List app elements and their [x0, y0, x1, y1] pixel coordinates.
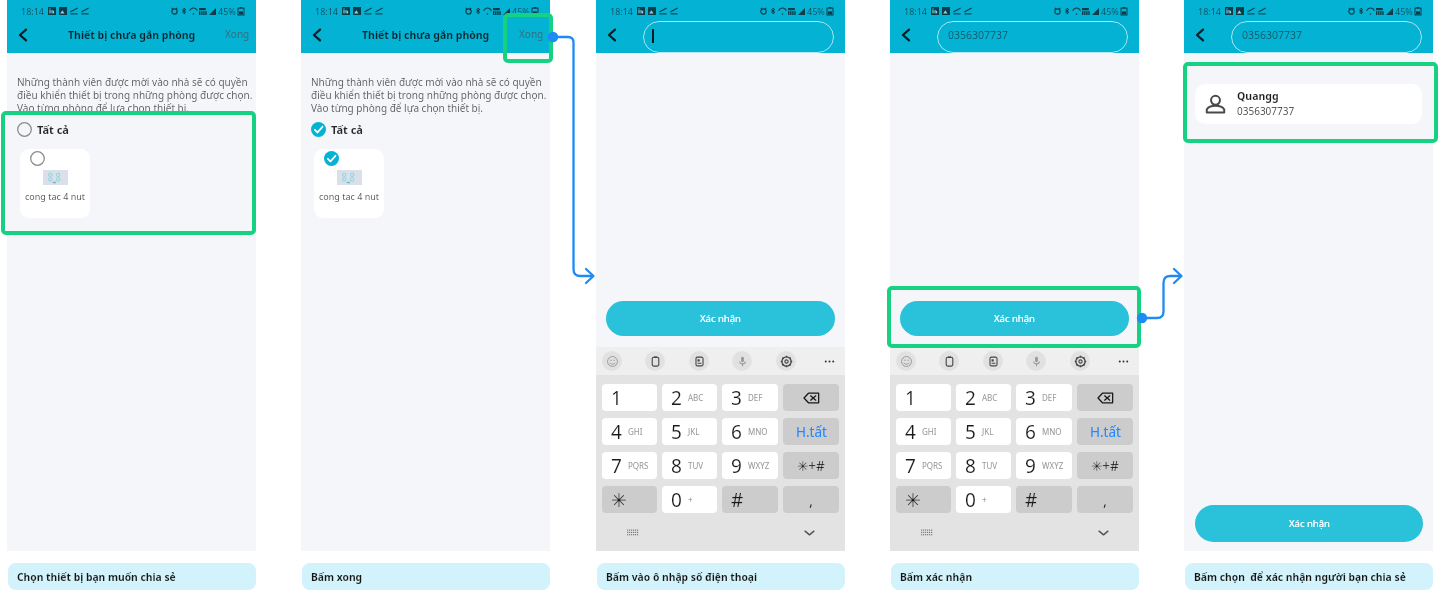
- staticText: 18:14: [904, 5, 928, 17]
- staticText: 2: [671, 385, 682, 411]
- staticText: DEF: [1042, 392, 1057, 403]
- button[interactable]: Back: [599, 22, 625, 48]
- staticText: MNO: [1042, 426, 1062, 437]
- staticText: 4: [905, 419, 916, 445]
- button[interactable]: Tất cả: [17, 122, 73, 137]
- staticText: 3: [1025, 385, 1036, 411]
- button[interactable]: #: [1016, 486, 1072, 513]
- staticText: 6: [1025, 419, 1036, 445]
- button[interactable]: Bấm vào ô nhập số điện thoại: [597, 563, 845, 590]
- staticText: #: [731, 487, 744, 513]
- button[interactable]: ✳+#: [783, 452, 839, 479]
- button[interactable]: 2: [956, 384, 1011, 411]
- button[interactable]: 3: [722, 384, 778, 411]
- button[interactable]: ,: [783, 486, 839, 513]
- button[interactable]: Back: [893, 22, 919, 48]
- staticText: Thiết bị chưa gắn phòng: [362, 28, 490, 42]
- button[interactable]: H.tất: [1077, 418, 1133, 445]
- button[interactable]: Keyboard option: [1070, 351, 1090, 371]
- button[interactable]: Xong: [219, 21, 256, 47]
- staticText: Tất cả: [37, 122, 69, 137]
- button[interactable]: Chọn thiết bị bạn muốn chia sẻ: [8, 563, 256, 590]
- staticText: Xác nhận: [1289, 517, 1330, 530]
- button[interactable]: 9: [1016, 452, 1072, 479]
- button[interactable]: Keyboard option: [732, 351, 752, 371]
- button[interactable]: Quangg: [1195, 84, 1422, 124]
- staticText: 2: [965, 385, 976, 411]
- button[interactable]: ✳: [602, 486, 657, 513]
- other: Delete: [783, 384, 839, 411]
- button[interactable]: 0356307737: [1231, 21, 1422, 53]
- button[interactable]: 4: [602, 418, 657, 445]
- button[interactable]: Xác nhận: [606, 301, 835, 336]
- staticText: JKL: [688, 426, 700, 437]
- staticText: Xong: [225, 27, 250, 41]
- staticText: 9: [1025, 453, 1036, 479]
- button[interactable]: Bấm xác nhận: [891, 563, 1139, 590]
- button[interactable]: Keyboard option: [1026, 351, 1046, 371]
- staticText: Chọn thiết bị bạn muốn chia sẻ: [17, 570, 176, 584]
- button[interactable]: 1: [896, 384, 951, 411]
- button[interactable]: 8: [956, 452, 1011, 479]
- button[interactable]: ,: [1077, 486, 1133, 513]
- button[interactable]: 0: [956, 486, 1011, 513]
- staticText: #: [1025, 487, 1038, 513]
- staticText: GHI: [628, 426, 643, 437]
- button[interactable]: 0356307737: [937, 21, 1128, 53]
- staticText: ABC: [982, 392, 998, 403]
- button[interactable]: 6: [1016, 418, 1072, 445]
- button[interactable]: ✳+#: [1077, 452, 1133, 479]
- button[interactable]: Keyboard option: [689, 351, 709, 371]
- staticText: 1: [905, 385, 916, 411]
- staticText: 7: [905, 453, 916, 479]
- staticText: 18:14: [610, 5, 634, 17]
- button[interactable]: Keyboard option: [602, 351, 622, 371]
- button[interactable]: 5: [956, 418, 1011, 445]
- button[interactable]: Keyboard option: [645, 351, 665, 371]
- button[interactable]: 1: [602, 384, 657, 411]
- button[interactable]: Keyboard option: [819, 351, 839, 371]
- button[interactable]: 6: [722, 418, 778, 445]
- button[interactable]: Keyboard option: [896, 351, 916, 371]
- button[interactable]: Delete: [1077, 384, 1133, 411]
- staticText: ✳: [611, 489, 627, 511]
- button[interactable]: 0: [662, 486, 717, 513]
- button[interactable]: Back: [1187, 22, 1213, 48]
- button[interactable]: H.tất: [783, 418, 839, 445]
- button[interactable]: 5: [662, 418, 717, 445]
- button[interactable]: cong tac 4 nut: [20, 149, 90, 218]
- staticText: 45%: [1395, 5, 1413, 17]
- button[interactable]: Back: [304, 22, 330, 48]
- button[interactable]: 7: [896, 452, 951, 479]
- button[interactable]: 3: [1016, 384, 1072, 411]
- button[interactable]: Hide keyboard: [773, 513, 845, 551]
- staticText: Thiết bị chưa gắn phòng: [68, 28, 196, 42]
- button[interactable]: Keyboard layout: [890, 513, 962, 551]
- button[interactable]: Keyboard option: [1113, 351, 1133, 371]
- button[interactable]: Tất cả: [311, 122, 367, 137]
- staticText: Bấm vào ô nhập số điện thoại: [606, 570, 758, 584]
- button[interactable]: #: [722, 486, 778, 513]
- button[interactable]: Xác nhận: [900, 301, 1129, 336]
- staticText: Bấm chọn để xác nhận người bạn chia sẻ: [1194, 570, 1406, 584]
- button[interactable]: Bấm chọn để xác nhận người bạn chia sẻ: [1185, 563, 1433, 590]
- button[interactable]: 7: [602, 452, 657, 479]
- button[interactable]: Back: [10, 22, 36, 48]
- button[interactable]: Keyboard option: [776, 351, 796, 371]
- button[interactable]: Xong: [513, 21, 550, 47]
- button[interactable]: 9: [722, 452, 778, 479]
- button[interactable]: Keyboard option: [939, 351, 959, 371]
- button[interactable]: Xác nhận: [1195, 505, 1423, 542]
- button[interactable]: Keyboard layout: [596, 513, 668, 551]
- staticText: Những thành viên được mời vào nhà sẽ có …: [311, 75, 547, 115]
- button[interactable]: Keyboard option: [983, 351, 1003, 371]
- button[interactable]: 4: [896, 418, 951, 445]
- button[interactable]: Delete: [783, 384, 839, 411]
- button[interactable]: [643, 21, 834, 53]
- button[interactable]: 2: [662, 384, 717, 411]
- button[interactable]: Bấm xong: [302, 563, 550, 590]
- button[interactable]: cong tac 4 nut: [314, 149, 384, 218]
- button[interactable]: 8: [662, 452, 717, 479]
- button[interactable]: ✳: [896, 486, 951, 513]
- button[interactable]: Hide keyboard: [1067, 513, 1139, 551]
